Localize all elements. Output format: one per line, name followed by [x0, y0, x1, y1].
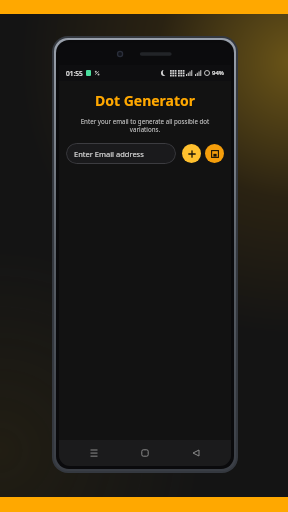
staticText: Enter Email address	[74, 149, 144, 159]
button[interactable]: Home	[136, 444, 154, 462]
staticText: 94%	[212, 69, 224, 77]
button[interactable]: Recent apps	[85, 444, 103, 462]
button[interactable]: Add	[182, 144, 201, 163]
button[interactable]: Enter Email address	[66, 143, 176, 164]
button[interactable]: Save	[205, 144, 224, 163]
button[interactable]: Back	[187, 444, 205, 462]
staticText: Enter your email to generate all possibl…	[65, 117, 225, 133]
staticText: 01:55	[66, 69, 83, 78]
staticText: Dot Generator	[59, 91, 231, 110]
